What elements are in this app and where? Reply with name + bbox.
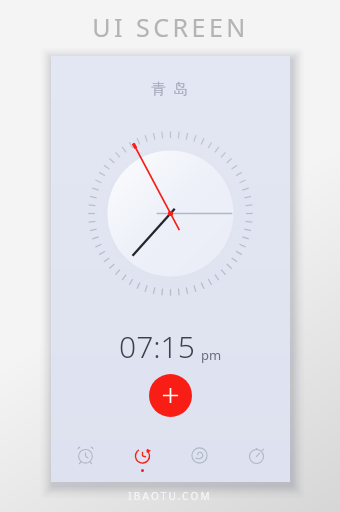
button[interactable]: Stopwatch [233, 440, 279, 480]
staticText: 07:15 [119, 326, 195, 367]
staticText: UI SCREEN [92, 10, 249, 44]
staticText: 青 岛 [151, 78, 190, 98]
button[interactable]: Add alarm [149, 374, 192, 417]
staticText: pm [201, 346, 222, 364]
button[interactable]: World clock [176, 440, 222, 480]
button[interactable]: Timer [119, 440, 165, 480]
button[interactable]: Alarm [62, 440, 108, 480]
staticText: IBAOTU.COM [128, 489, 212, 503]
